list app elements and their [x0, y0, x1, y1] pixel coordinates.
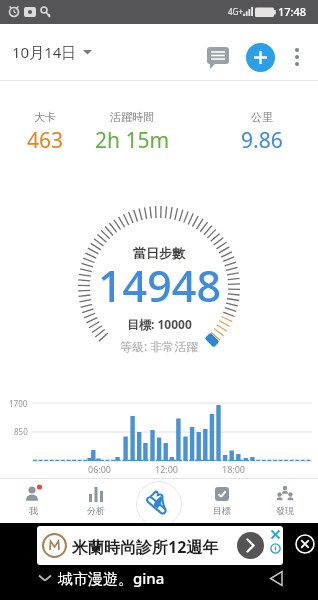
staticText: 公里 — [251, 110, 273, 124]
staticText: 發現 — [276, 505, 294, 516]
staticText: 大卡 — [34, 110, 56, 124]
button[interactable] — [246, 43, 275, 72]
staticText: 17:48 — [278, 4, 307, 19]
staticText: 目標 — [213, 505, 231, 516]
staticText: 2h 15m — [95, 126, 170, 155]
button[interactable]: 城市漫遊。gina — [58, 568, 165, 588]
button[interactable]: 公里 — [212, 110, 312, 155]
button[interactable]: 大卡 — [0, 110, 95, 155]
button[interactable] — [269, 570, 284, 587]
staticText: 目標: 10000 — [127, 316, 192, 332]
button[interactable]: 10月14日 — [12, 24, 92, 80]
staticText: 9.86 — [241, 126, 283, 155]
button[interactable]: 活躍時間 — [82, 110, 182, 155]
staticText: 14948 — [98, 256, 221, 315]
staticText: 850 — [14, 426, 28, 437]
staticText: 4G+ — [228, 6, 243, 17]
staticText: 06:00 — [88, 463, 112, 475]
staticText: 米蘭時尚診所12週年 — [72, 536, 219, 558]
staticText: 我 — [29, 505, 38, 516]
button[interactable]: 分析 — [74, 484, 118, 516]
staticText: 10月14日 — [12, 42, 77, 62]
button[interactable]: 發現 — [263, 484, 307, 516]
button[interactable]: 米蘭時尚診所12週年 — [37, 526, 283, 565]
button[interactable]: 我 — [11, 484, 55, 516]
button[interactable] — [288, 42, 306, 72]
button[interactable] — [205, 45, 233, 71]
staticText: 12:00 — [155, 463, 179, 475]
staticText: 分析 — [87, 505, 105, 516]
staticText: 463 — [27, 126, 64, 155]
staticText: 活躍時間 — [110, 110, 154, 124]
staticText: 當日步數 — [133, 245, 185, 261]
button[interactable] — [136, 481, 182, 527]
button[interactable]: 目標 — [200, 484, 244, 516]
staticText: 18:00 — [222, 463, 246, 475]
button[interactable] — [295, 534, 315, 554]
staticText: 1700 — [9, 398, 28, 409]
staticText: 等級: 非常活躍 — [120, 338, 199, 354]
